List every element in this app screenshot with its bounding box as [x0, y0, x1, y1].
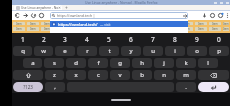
button[interactable]: Shift: [13, 70, 43, 80]
button[interactable]: i: [165, 46, 185, 56]
button[interactable]: Close tab: [56, 5, 62, 10]
button[interactable]: Item: [27, 27, 39, 31]
button[interactable]: 1: [12, 33, 33, 45]
button[interactable]: b: [132, 70, 152, 80]
button[interactable]: 5: [98, 33, 120, 45]
button[interactable]: Item: [97, 22, 109, 25]
button[interactable]: Item: [83, 22, 95, 25]
button[interactable]: Item: [41, 27, 53, 31]
button[interactable]: u: [143, 46, 163, 56]
button[interactable]: Extensions: [216, 11, 224, 20]
button[interactable]: 4: [76, 33, 98, 45]
button[interactable]: w: [34, 46, 53, 56]
button[interactable]: Enter: [198, 82, 229, 92]
button[interactable]: ?123: [13, 82, 43, 92]
button[interactable]: Account: [208, 11, 216, 20]
button[interactable]: Window control: [212, 0, 218, 5]
button[interactable]: c: [88, 70, 108, 80]
button[interactable]: Home: [37, 11, 45, 20]
button[interactable]: Use Linux anywhere - No: [14, 5, 62, 10]
staticText: w: [41, 47, 46, 55]
button[interactable]: 7: [142, 33, 164, 45]
button[interactable]: 0: [208, 33, 230, 45]
staticText: c: [97, 71, 100, 79]
staticText: Item: [16, 27, 22, 31]
button[interactable]: z: [45, 70, 64, 80]
button[interactable]: 3: [54, 33, 76, 45]
button[interactable]: n: [154, 70, 174, 80]
button[interactable]: v: [110, 70, 130, 80]
staticText: ,: [54, 83, 56, 91]
button[interactable]: Item: [13, 22, 25, 25]
button[interactable]: .: [176, 82, 196, 92]
button[interactable]: g: [110, 58, 130, 68]
button[interactable]: 6: [120, 33, 142, 45]
button[interactable]: Item: [223, 27, 229, 31]
button[interactable]: Item: [181, 27, 193, 31]
button[interactable]: Menu: [224, 11, 230, 20]
button[interactable]: r: [77, 46, 97, 56]
button[interactable]: x: [66, 70, 86, 80]
button[interactable]: f: [88, 58, 108, 68]
button[interactable]: Backspace: [198, 70, 229, 80]
button[interactable]: l: [198, 58, 218, 68]
button[interactable]: New tab: [63, 5, 69, 10]
button[interactable]: Back: [13, 11, 21, 20]
staticText: Item: [86, 22, 92, 25]
button[interactable]: Item: [181, 22, 193, 25]
button[interactable]: Item: [195, 22, 207, 25]
button[interactable]: https://ownland.tech |: [50, 12, 188, 19]
button[interactable]: Go: [182, 13, 187, 18]
button[interactable]: Reload: [29, 11, 37, 20]
button[interactable]: Item: [41, 22, 53, 25]
button[interactable]: h: [132, 58, 152, 68]
button[interactable]: Window control: [224, 0, 230, 5]
button[interactable]: 8: [164, 33, 186, 45]
button[interactable]: q: [13, 46, 32, 56]
button[interactable]: Item: [13, 27, 25, 31]
button[interactable]: a: [23, 58, 42, 68]
button[interactable]: ,: [45, 82, 65, 92]
staticText: Item: [198, 22, 204, 25]
button[interactable]: e: [55, 46, 75, 56]
button[interactable]: Forward: [21, 11, 29, 20]
button[interactable]: y: [121, 46, 141, 56]
button[interactable]: t: [99, 46, 119, 56]
button[interactable]: Downloads: [200, 11, 208, 20]
button[interactable]: m: [176, 70, 196, 80]
button[interactable]: j: [154, 58, 174, 68]
button[interactable]: 9: [186, 33, 208, 45]
button[interactable]: d: [66, 58, 86, 68]
button[interactable]: k: [176, 58, 196, 68]
staticText: f: [97, 59, 100, 67]
button[interactable]: Item: [209, 22, 221, 25]
button[interactable]: p: [209, 46, 229, 56]
button[interactable]: s: [44, 58, 64, 68]
button[interactable]: Window control: [218, 0, 224, 5]
button[interactable]: Item: [195, 27, 207, 31]
button[interactable]: Item: [223, 22, 229, 25]
button[interactable]: Item: [209, 27, 221, 31]
button[interactable]: Item: [27, 22, 39, 25]
button[interactable]: Item: [55, 22, 67, 25]
button[interactable]: ●: [50, 21, 188, 27]
button[interactable]: 2: [33, 33, 54, 45]
button[interactable]: Item: [69, 22, 81, 25]
button[interactable]: o: [187, 46, 207, 56]
